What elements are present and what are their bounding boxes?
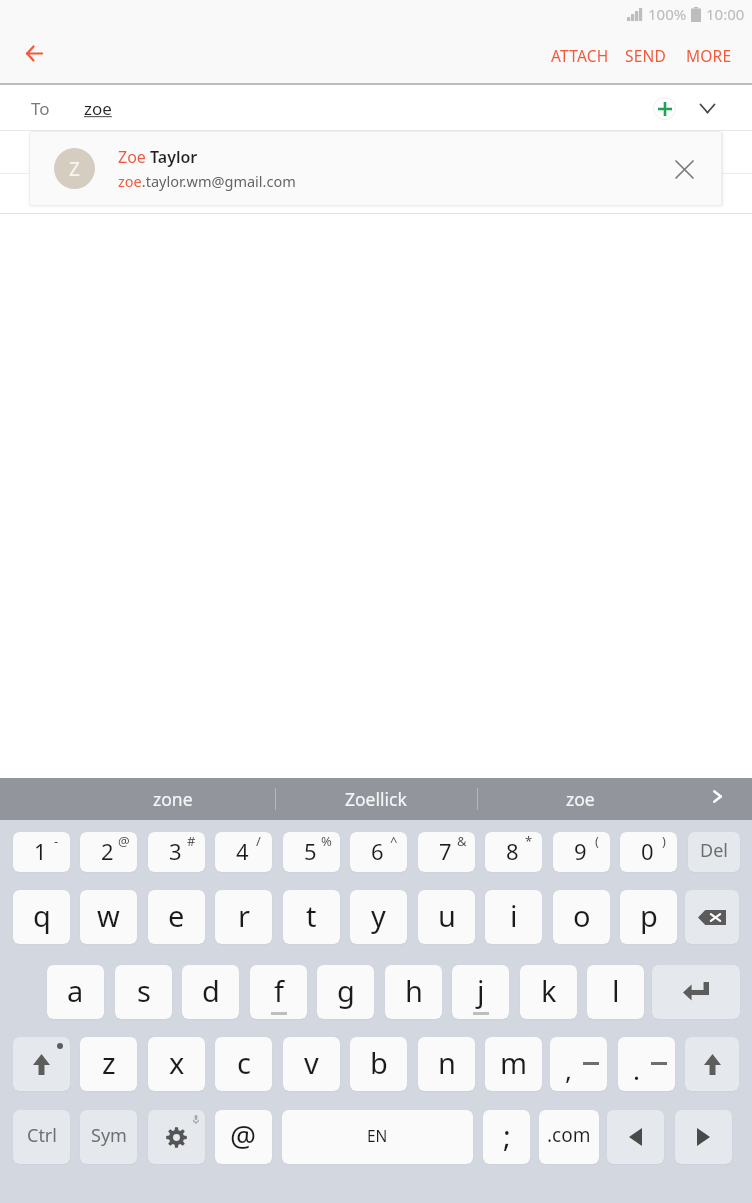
button[interactable]: z [80, 1037, 137, 1091]
staticText: Zoellick [345, 787, 407, 811]
button[interactable]: More suggestions [684, 775, 750, 817]
button[interactable]: h [385, 965, 442, 1019]
staticText: n [438, 1043, 456, 1082]
button[interactable]: EN [282, 1110, 473, 1164]
staticText: 9 [574, 836, 587, 866]
button[interactable]: n [418, 1037, 475, 1091]
button[interactable]: s [115, 965, 172, 1019]
staticText: t [306, 896, 317, 935]
button[interactable]: MORE [680, 35, 738, 76]
button[interactable]: backspace [685, 890, 739, 944]
staticText: m [500, 1043, 528, 1082]
staticText: @ [118, 832, 130, 850]
staticText: Sym [91, 1123, 127, 1148]
staticText: e [168, 896, 185, 935]
staticText: . [633, 1052, 640, 1087]
staticText: z [102, 1043, 116, 1082]
staticText: a [67, 971, 84, 1010]
button[interactable]: zoe [478, 778, 682, 820]
staticText: zoe.taylor.wm@gmail.com [118, 171, 296, 191]
button[interactable]: v [283, 1037, 340, 1091]
button[interactable]: e [148, 890, 205, 944]
staticText: ^ [390, 832, 398, 850]
button[interactable]: Back [12, 34, 56, 78]
button[interactable]: 6 [350, 832, 407, 872]
button[interactable]: ATTACH [545, 35, 615, 76]
button[interactable]: 4 [215, 832, 272, 872]
staticText: Z [69, 156, 80, 182]
staticText: % [321, 832, 332, 850]
staticText: y [371, 896, 386, 935]
button[interactable]: ; [483, 1110, 530, 1164]
button[interactable]: Ctrl [13, 1110, 70, 1164]
staticText: * [525, 832, 533, 850]
staticText: h [405, 971, 423, 1010]
button[interactable]: Sym [80, 1110, 137, 1164]
button[interactable]: 3 [148, 832, 205, 872]
button[interactable]: 5 [283, 832, 340, 872]
button[interactable]: 8 [485, 832, 542, 872]
button[interactable]: @ [215, 1110, 272, 1164]
staticText: ; [503, 1116, 511, 1155]
staticText: w [97, 896, 120, 935]
staticText: b [370, 1043, 388, 1082]
button[interactable]: Zoellick [275, 778, 477, 820]
staticText: 1 [34, 836, 47, 866]
staticText: .com [547, 1122, 591, 1148]
button[interactable]: Del [688, 832, 740, 872]
button[interactable]: . [618, 1037, 675, 1091]
button[interactable]: 0 [620, 832, 677, 872]
button[interactable]: Remove recipient [662, 147, 706, 191]
staticText: & [457, 832, 467, 850]
button[interactable]: enter [652, 965, 740, 1019]
button[interactable]: m [485, 1037, 542, 1091]
button[interactable]: b [350, 1037, 407, 1091]
button[interactable]: g [317, 965, 374, 1019]
button[interactable]: q [13, 890, 70, 944]
button[interactable]: gear [148, 1110, 205, 1164]
button[interactable]: y [350, 890, 407, 944]
button[interactable]: , [550, 1037, 607, 1091]
staticText: MORE [686, 45, 732, 66]
staticText: g [337, 971, 355, 1010]
button[interactable]: w [80, 890, 137, 944]
button[interactable]: o [553, 890, 610, 944]
staticText: k [541, 971, 557, 1010]
button[interactable]: l [587, 965, 644, 1019]
button[interactable]: Z [29, 131, 722, 206]
staticText: # [187, 832, 196, 850]
button[interactable]: u [418, 890, 475, 944]
button[interactable]: d [182, 965, 239, 1019]
button[interactable]: .com [539, 1110, 599, 1164]
button[interactable]: shift [685, 1037, 739, 1091]
staticText: Zoe Taylor [118, 146, 198, 168]
button[interactable]: right [675, 1110, 732, 1164]
staticText: 3 [169, 836, 182, 866]
button[interactable]: shift [13, 1037, 70, 1091]
button[interactable]: 9 [553, 832, 610, 872]
button[interactable]: t [283, 890, 340, 944]
button[interactable]: c [215, 1037, 272, 1091]
button[interactable]: i [485, 890, 542, 944]
staticText: ( [595, 832, 599, 850]
button[interactable]: SEND [619, 35, 673, 76]
button[interactable]: j [452, 965, 509, 1019]
button[interactable]: 7 [418, 832, 475, 872]
button[interactable]: p [620, 890, 677, 944]
button[interactable]: left [607, 1110, 664, 1164]
button[interactable]: 1 [13, 832, 70, 872]
button[interactable]: f [250, 965, 307, 1019]
staticText: 10:00 [706, 4, 745, 24]
staticText: i [510, 896, 518, 935]
button[interactable]: a [47, 965, 104, 1019]
button[interactable]: k [520, 965, 577, 1019]
button[interactable]: 2 [80, 832, 137, 872]
staticText: ) [662, 832, 666, 850]
button[interactable]: Add recipient [643, 87, 685, 129]
staticText: 8 [506, 836, 519, 866]
button[interactable]: r [215, 890, 272, 944]
button[interactable]: x [148, 1037, 205, 1091]
staticText: , [565, 1052, 572, 1087]
button[interactable]: zone [71, 778, 275, 820]
button[interactable]: Expand recipients [686, 87, 728, 129]
